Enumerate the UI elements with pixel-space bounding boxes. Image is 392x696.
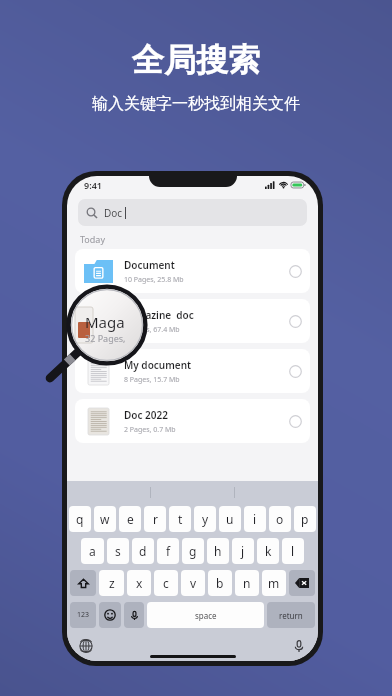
staticText: Document xyxy=(124,258,175,272)
button[interactable]: Select My document xyxy=(289,365,302,378)
staticText: My document xyxy=(124,358,192,372)
staticText: d xyxy=(139,543,147,559)
staticText: 输入关键字一秒找到相关文件 xyxy=(92,94,300,114)
button[interactable]: Select Document xyxy=(289,265,302,278)
button[interactable]: return xyxy=(267,602,315,628)
button[interactable]: u xyxy=(219,506,241,532)
button[interactable]: n xyxy=(235,570,259,596)
button[interactable]: k xyxy=(257,538,279,564)
staticText: t xyxy=(178,511,183,527)
staticText: s xyxy=(115,543,121,559)
button[interactable]: f xyxy=(157,538,179,564)
button[interactable]: Emoji xyxy=(99,602,121,628)
button[interactable]: q xyxy=(69,506,91,532)
button[interactable]: m xyxy=(262,570,286,596)
button[interactable]: e xyxy=(119,506,141,532)
staticText: Today xyxy=(80,233,105,245)
staticText: x xyxy=(136,575,143,591)
staticText: b xyxy=(216,575,224,591)
staticText: h xyxy=(214,543,222,559)
staticText: p xyxy=(301,511,309,527)
staticText: v xyxy=(190,575,197,591)
button[interactable]: j xyxy=(232,538,254,564)
button[interactable]: Dictate xyxy=(124,602,144,628)
button[interactable]: t xyxy=(169,506,191,532)
staticText: 2 Pages, 0.7 Mb xyxy=(124,425,176,435)
button[interactable]: Doc xyxy=(78,199,307,226)
button[interactable]: h xyxy=(207,538,229,564)
button[interactable]: 123 xyxy=(70,602,96,628)
staticText: l xyxy=(291,543,295,559)
button[interactable]: a xyxy=(81,538,104,564)
button[interactable]: y xyxy=(194,506,216,532)
staticText: Maga xyxy=(85,312,125,332)
staticText: 9:41 xyxy=(84,179,102,191)
button[interactable]: Select Doc 2022 xyxy=(289,415,302,428)
staticText: 全局搜索 xyxy=(132,40,260,80)
staticText: a xyxy=(89,543,96,559)
staticText: q xyxy=(76,511,84,527)
button[interactable]: Doc 2022 xyxy=(75,399,310,443)
button[interactable]: z xyxy=(99,570,124,596)
staticText: o xyxy=(276,511,284,527)
button[interactable]: Magazine doc xyxy=(75,299,310,343)
button[interactable]: b xyxy=(208,570,232,596)
staticText: z xyxy=(109,575,115,591)
button[interactable]: Dictation xyxy=(292,639,306,653)
staticText: r xyxy=(153,511,158,527)
staticText: c xyxy=(163,575,169,591)
staticText: Magazine doc xyxy=(124,308,194,322)
button[interactable]: x xyxy=(127,570,151,596)
staticText: k xyxy=(265,543,272,559)
button[interactable]: i xyxy=(244,506,266,532)
staticText: Doc xyxy=(104,206,123,220)
staticText: g xyxy=(189,543,197,559)
button[interactable]: l xyxy=(282,538,304,564)
button[interactable]: d xyxy=(132,538,154,564)
staticText: 10 Pages, 25.8 Mb xyxy=(124,275,184,285)
staticText: w xyxy=(100,511,110,527)
staticText: n xyxy=(243,575,251,591)
button[interactable]: Change keyboard language xyxy=(79,639,93,653)
button[interactable]: o xyxy=(269,506,291,532)
staticText: m xyxy=(268,575,280,591)
button[interactable]: r xyxy=(144,506,166,532)
staticText: space xyxy=(195,610,217,621)
staticText: Doc 2022 xyxy=(124,408,168,422)
button[interactable]: space xyxy=(147,602,264,628)
button[interactable]: w xyxy=(94,506,116,532)
button[interactable]: p xyxy=(294,506,316,532)
staticText: f xyxy=(166,543,171,559)
staticText: i xyxy=(253,511,257,527)
button[interactable]: s xyxy=(107,538,129,564)
staticText: y xyxy=(202,511,209,527)
staticText: 32 Pages, xyxy=(85,332,126,344)
button[interactable]: Shift xyxy=(70,570,96,596)
staticText: 4 Pages, 67.4 Mb xyxy=(124,325,180,335)
button[interactable]: Document xyxy=(75,249,310,293)
staticText: 8 Pages, 15.7 Mb xyxy=(124,375,180,385)
staticText: return xyxy=(279,610,303,621)
button[interactable]: c xyxy=(154,570,178,596)
button[interactable]: My document xyxy=(75,349,310,393)
staticText: 123 xyxy=(77,610,90,620)
button[interactable]: Select Magazine doc xyxy=(289,315,302,328)
staticText: u xyxy=(226,511,234,527)
button[interactable]: v xyxy=(181,570,205,596)
staticText: j xyxy=(241,543,245,559)
button[interactable]: Backspace xyxy=(289,570,315,596)
staticText: e xyxy=(127,511,134,527)
button[interactable]: g xyxy=(182,538,204,564)
